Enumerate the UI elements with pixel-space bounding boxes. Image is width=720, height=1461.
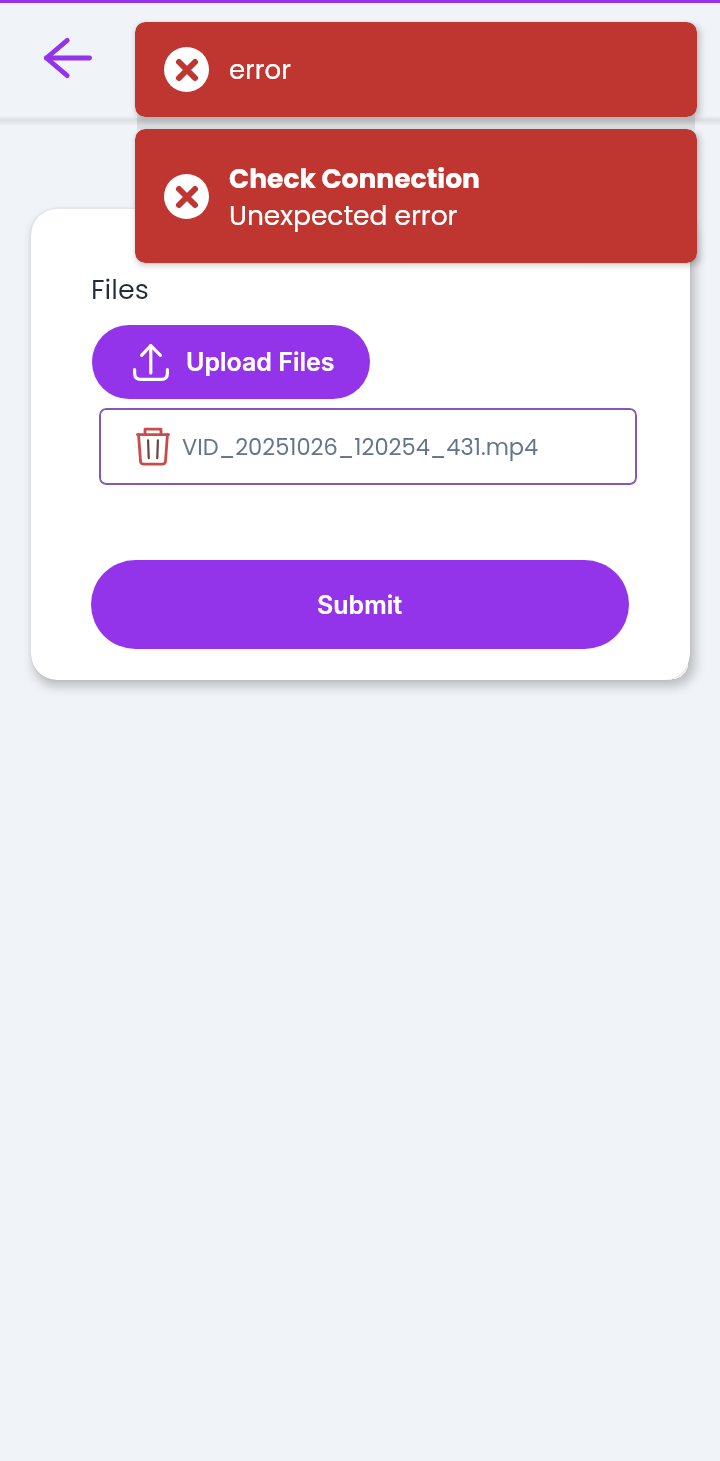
staticText: Files <box>91 271 149 309</box>
staticText: Unexpected error <box>229 197 458 234</box>
button[interactable]: error <box>135 22 697 117</box>
button[interactable]: VID_20251026_120254_431.mp4 <box>99 408 637 485</box>
staticText: error <box>229 52 291 88</box>
button[interactable]: Back <box>24 14 112 102</box>
staticText: Upload Files <box>186 347 335 377</box>
button[interactable]: Submit <box>91 560 629 649</box>
staticText: Check Connection <box>229 160 480 197</box>
button[interactable]: Check Connection <box>135 129 697 263</box>
staticText: VID_20251026_120254_431.mp4 <box>182 431 539 462</box>
button[interactable]: Upload Files <box>92 325 370 399</box>
staticText: Submit <box>317 590 403 620</box>
